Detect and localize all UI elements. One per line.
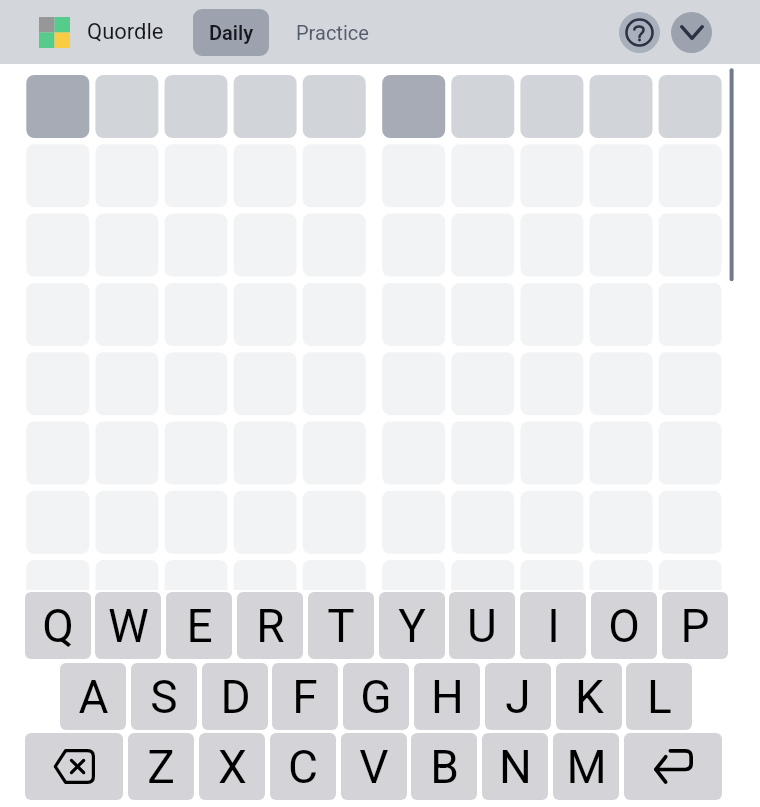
button[interactable]: M (553, 733, 619, 800)
staticText: O (608, 599, 640, 653)
staticText: Daily (209, 21, 254, 44)
button[interactable]: D (202, 663, 268, 730)
staticText: Z (147, 740, 175, 794)
staticText: J (505, 670, 531, 724)
button[interactable]: I (520, 592, 586, 659)
button[interactable]: K (556, 663, 622, 730)
button[interactable]: N (482, 733, 548, 800)
button[interactable]: Practice (279, 9, 385, 56)
button[interactable]: Z (128, 733, 194, 800)
staticText: X (218, 740, 247, 794)
staticText: T (327, 599, 355, 653)
button[interactable]: Q (25, 592, 91, 659)
button[interactable]: P (662, 592, 728, 659)
staticText: D (220, 670, 251, 724)
staticText: I (547, 599, 560, 653)
staticText: M (566, 740, 607, 794)
button[interactable]: G (343, 663, 409, 730)
button[interactable]: S (131, 663, 197, 730)
staticText: V (359, 740, 389, 794)
button[interactable]: Enter (624, 733, 722, 800)
button[interactable]: J (485, 663, 551, 730)
button[interactable]: R (237, 592, 303, 659)
button[interactable]: X (199, 733, 265, 800)
button[interactable]: U (449, 592, 515, 659)
staticText: C (288, 740, 318, 794)
staticText: Q (42, 599, 74, 653)
button[interactable]: A (60, 663, 126, 730)
staticText: R (256, 599, 285, 653)
button[interactable]: Backspace (25, 733, 123, 800)
button[interactable]: H (414, 663, 480, 730)
button[interactable]: Help (619, 12, 660, 53)
button[interactable]: T (308, 592, 374, 659)
staticText: Practice (296, 21, 369, 44)
button[interactable]: E (166, 592, 232, 659)
staticText: S (150, 670, 178, 724)
staticText: N (499, 740, 532, 794)
button[interactable]: B (411, 733, 477, 800)
staticText: K (575, 670, 604, 724)
staticText: H (431, 670, 464, 724)
staticText: U (467, 599, 497, 653)
button[interactable]: L (626, 663, 692, 730)
button[interactable]: C (270, 733, 336, 800)
button[interactable]: O (591, 592, 657, 659)
button[interactable]: Y (379, 592, 445, 659)
button[interactable]: V (341, 733, 407, 800)
staticText: B (430, 740, 459, 794)
staticText: Y (398, 599, 426, 653)
staticText: A (78, 670, 109, 724)
staticText: F (292, 670, 318, 724)
staticText: L (647, 670, 672, 724)
staticText: Quordle (87, 19, 164, 45)
staticText: E (186, 599, 213, 653)
button[interactable]: Daily (193, 9, 269, 56)
staticText: P (680, 599, 710, 653)
button[interactable]: More options (671, 12, 712, 53)
staticText: W (108, 599, 149, 653)
button[interactable]: F (272, 663, 338, 730)
staticText: G (360, 670, 392, 724)
button[interactable]: W (95, 592, 161, 659)
